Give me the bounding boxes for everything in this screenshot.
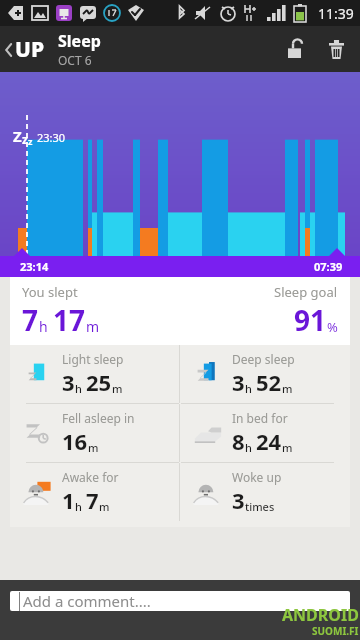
staticText: h — [75, 499, 82, 514]
staticText: SUOMI.FI — [312, 624, 359, 638]
button[interactable]: Woke up — [180, 463, 350, 521]
staticText: m — [282, 440, 293, 455]
staticText: ANDROID — [282, 604, 359, 626]
staticText: 16 — [62, 426, 88, 456]
staticText: 3 — [232, 485, 245, 515]
staticText: times — [245, 499, 275, 514]
staticText: m — [86, 317, 100, 336]
staticText: 11:39 — [318, 4, 354, 23]
staticText: 3 — [232, 367, 245, 397]
staticText: h — [75, 381, 82, 396]
button[interactable]: Delete — [316, 27, 356, 71]
staticText: h — [39, 317, 48, 336]
staticText: Light sleep — [62, 351, 124, 367]
staticText: 24 — [256, 426, 282, 456]
staticText: 1 — [62, 485, 75, 515]
staticText: 52 — [256, 367, 282, 397]
staticText: h — [245, 381, 252, 396]
button[interactable]: Light sleep — [10, 345, 179, 403]
staticText: 91 — [294, 301, 327, 339]
staticText: Z — [13, 126, 22, 146]
button[interactable]: Back to UP — [0, 35, 49, 64]
button[interactable]: Awake for — [10, 463, 179, 521]
staticText: h — [245, 440, 252, 455]
staticText: z — [22, 131, 28, 147]
staticText: 8 — [232, 426, 245, 456]
staticText: z — [28, 135, 33, 147]
staticText: 7 — [22, 301, 39, 339]
staticText: m — [88, 440, 99, 455]
staticText: 3 — [62, 367, 75, 397]
staticText: Woke up — [232, 469, 282, 485]
button[interactable]: Lock — [272, 27, 316, 71]
staticText: Awake for — [62, 469, 119, 485]
staticText: In bed for — [232, 410, 288, 426]
button[interactable]: Deep sleep — [180, 345, 350, 403]
staticText: 07:39 — [314, 259, 343, 274]
staticText: Sleep — [58, 30, 101, 52]
staticText: 17 — [53, 301, 86, 339]
staticText: 7 — [86, 485, 99, 515]
staticText: 23:14 — [20, 259, 49, 274]
staticText: Sleep goal — [274, 283, 338, 301]
staticText: % — [327, 318, 338, 336]
button[interactable]: Add a comment.... — [10, 591, 350, 611]
button[interactable]: You slept — [10, 277, 350, 345]
staticText: UP — [15, 35, 45, 64]
button[interactable]: In bed for — [180, 404, 350, 462]
staticText: Deep sleep — [232, 351, 295, 367]
staticText: Add a comment.... — [23, 591, 151, 611]
staticText: m — [282, 381, 293, 396]
staticText: Fell asleep in — [62, 410, 135, 426]
staticText: m — [112, 381, 123, 396]
staticText: You slept — [22, 283, 78, 301]
staticText: 25 — [86, 367, 112, 397]
staticText: m — [99, 499, 110, 514]
staticText: 23:30 — [37, 130, 66, 145]
button[interactable]: Fell asleep in — [10, 404, 179, 462]
staticText: OCT 6 — [58, 52, 92, 68]
